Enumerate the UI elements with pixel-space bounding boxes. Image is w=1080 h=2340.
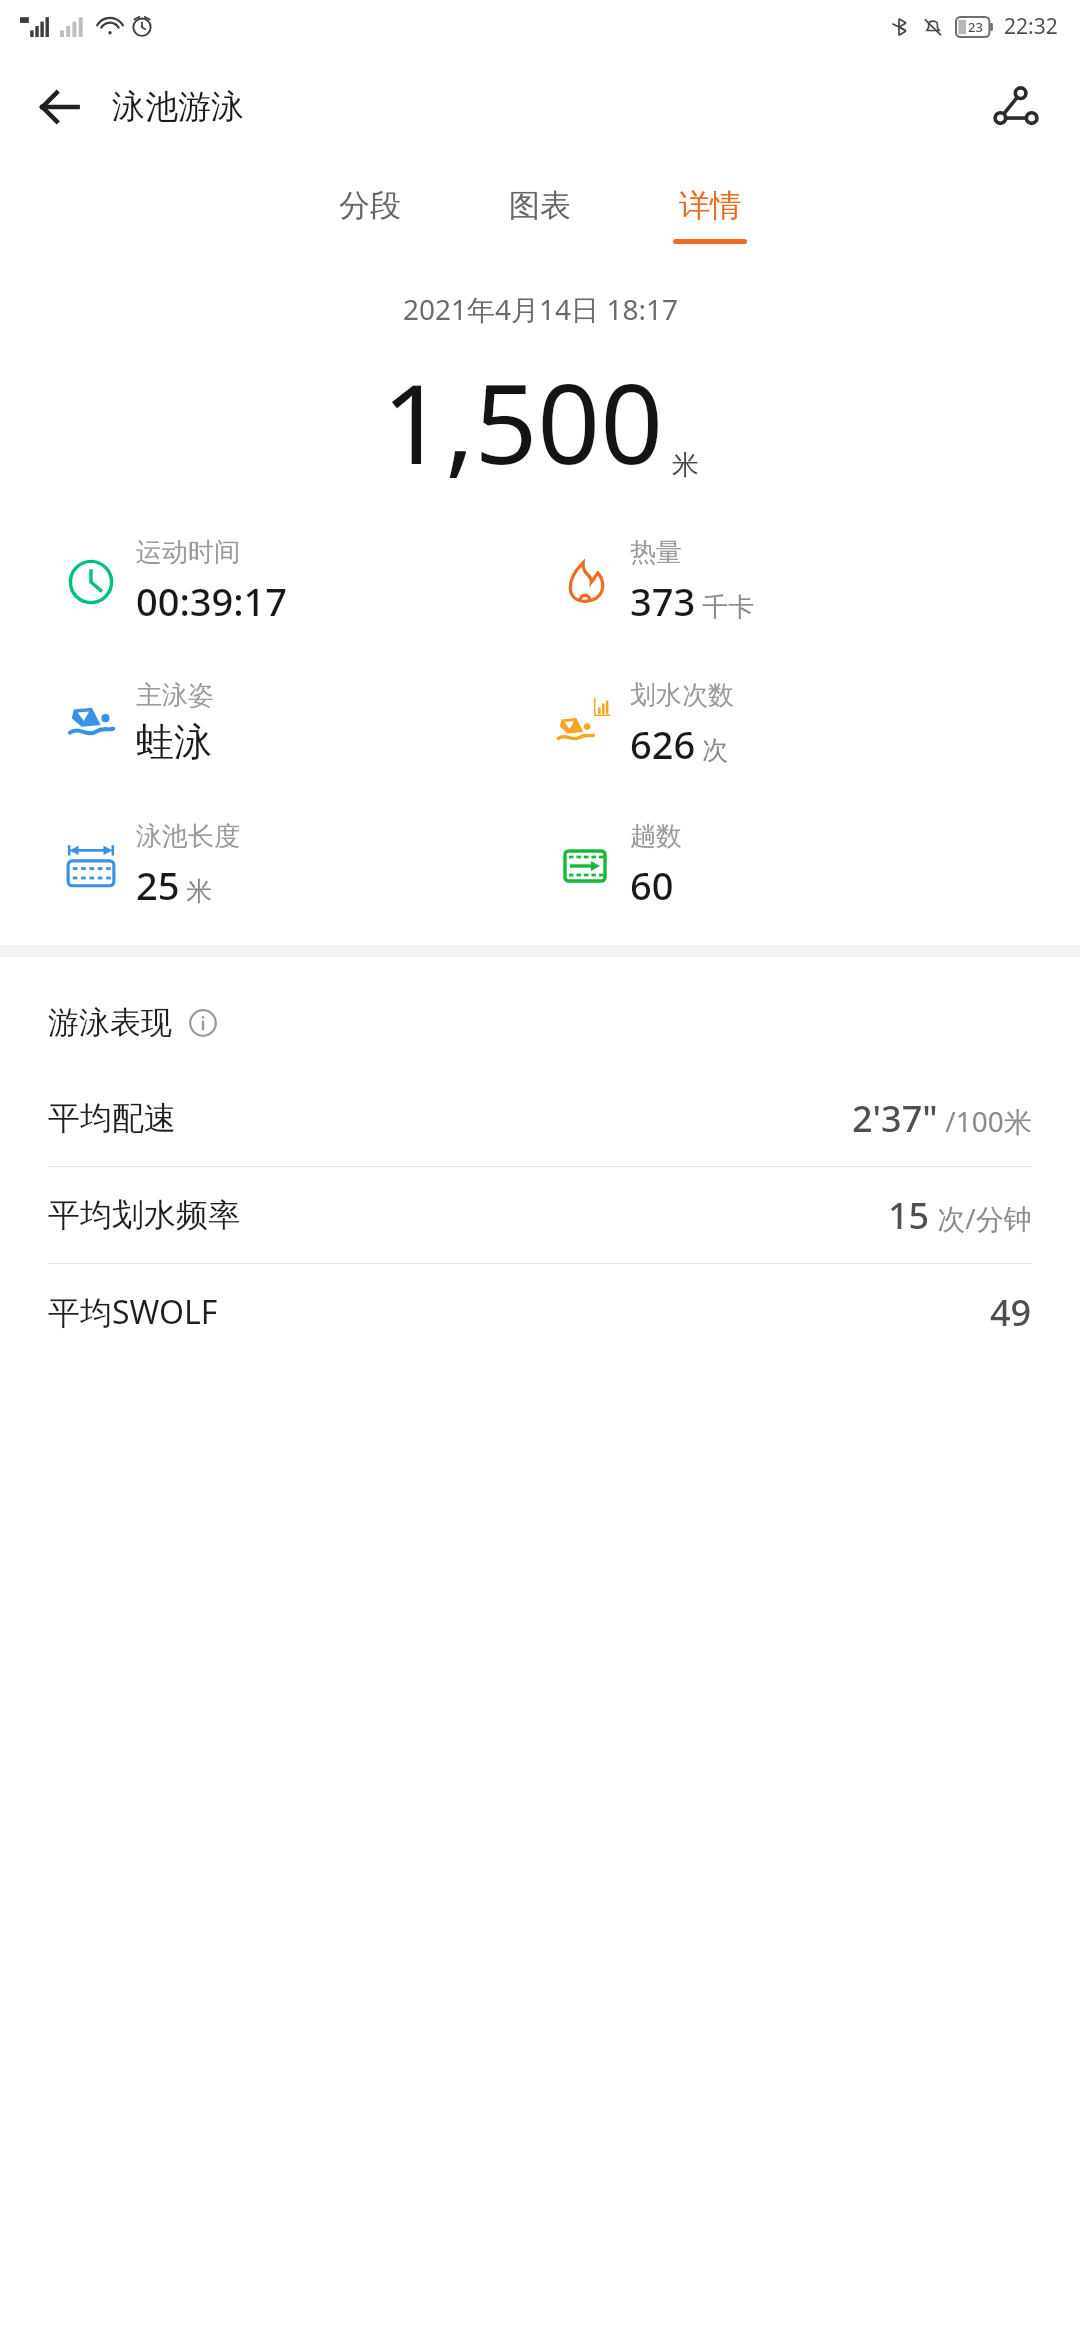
staticText: 平均配速 (48, 1098, 852, 1138)
staticText: 22:32 (1004, 12, 1058, 41)
button[interactable]: 平均配速 (0, 1070, 1080, 1167)
staticText: 泳池长度 (136, 820, 240, 853)
button[interactable]: 详情 (655, 180, 765, 250)
staticText: 00:39:17 (136, 575, 288, 627)
staticText: 60 (630, 859, 674, 911)
staticText: 游泳表现 (48, 1003, 172, 1042)
button[interactable]: Info (186, 1006, 220, 1040)
button[interactable]: 分段 (315, 180, 425, 250)
staticText: 23 (968, 18, 983, 36)
staticText: 泳池游泳 (112, 86, 244, 128)
staticText: 运动时间 (136, 536, 240, 569)
button[interactable]: 平均划水频率 (0, 1167, 1080, 1264)
staticText: 图表 (509, 186, 571, 225)
staticText: 米 (186, 875, 212, 908)
staticText: 千卡 (702, 591, 754, 624)
staticText: 373 (630, 575, 696, 627)
staticText: 分段 (339, 186, 401, 225)
staticText: 25 (136, 859, 180, 911)
staticText: 热量 (630, 536, 682, 569)
staticText: 主泳姿 (136, 679, 214, 712)
button[interactable]: Back (28, 75, 92, 139)
staticText: 2021年4月14日 18:17 (403, 290, 678, 328)
staticText: 平均划水频率 (48, 1195, 888, 1235)
staticText: 1,500 (382, 346, 664, 496)
button[interactable]: 图表 (485, 180, 595, 250)
staticText: 15 (888, 1191, 930, 1240)
staticText: 2'37" (852, 1094, 938, 1143)
button[interactable]: 平均SWOLF (0, 1264, 1080, 1360)
staticText: 626 (630, 718, 696, 770)
staticText: 趟数 (630, 820, 682, 853)
staticText: /100米 (938, 1102, 1032, 1140)
staticText: 米 (672, 448, 699, 482)
staticText: 蛙泳 (136, 718, 212, 766)
staticText: 平均SWOLF (48, 1290, 990, 1334)
staticText: 详情 (679, 186, 741, 225)
staticText: 次/分钟 (930, 1199, 1032, 1237)
staticText: 49 (990, 1288, 1032, 1337)
staticText: 次 (702, 734, 728, 767)
staticText: 划水次数 (630, 679, 734, 712)
button[interactable]: Share (984, 75, 1048, 139)
